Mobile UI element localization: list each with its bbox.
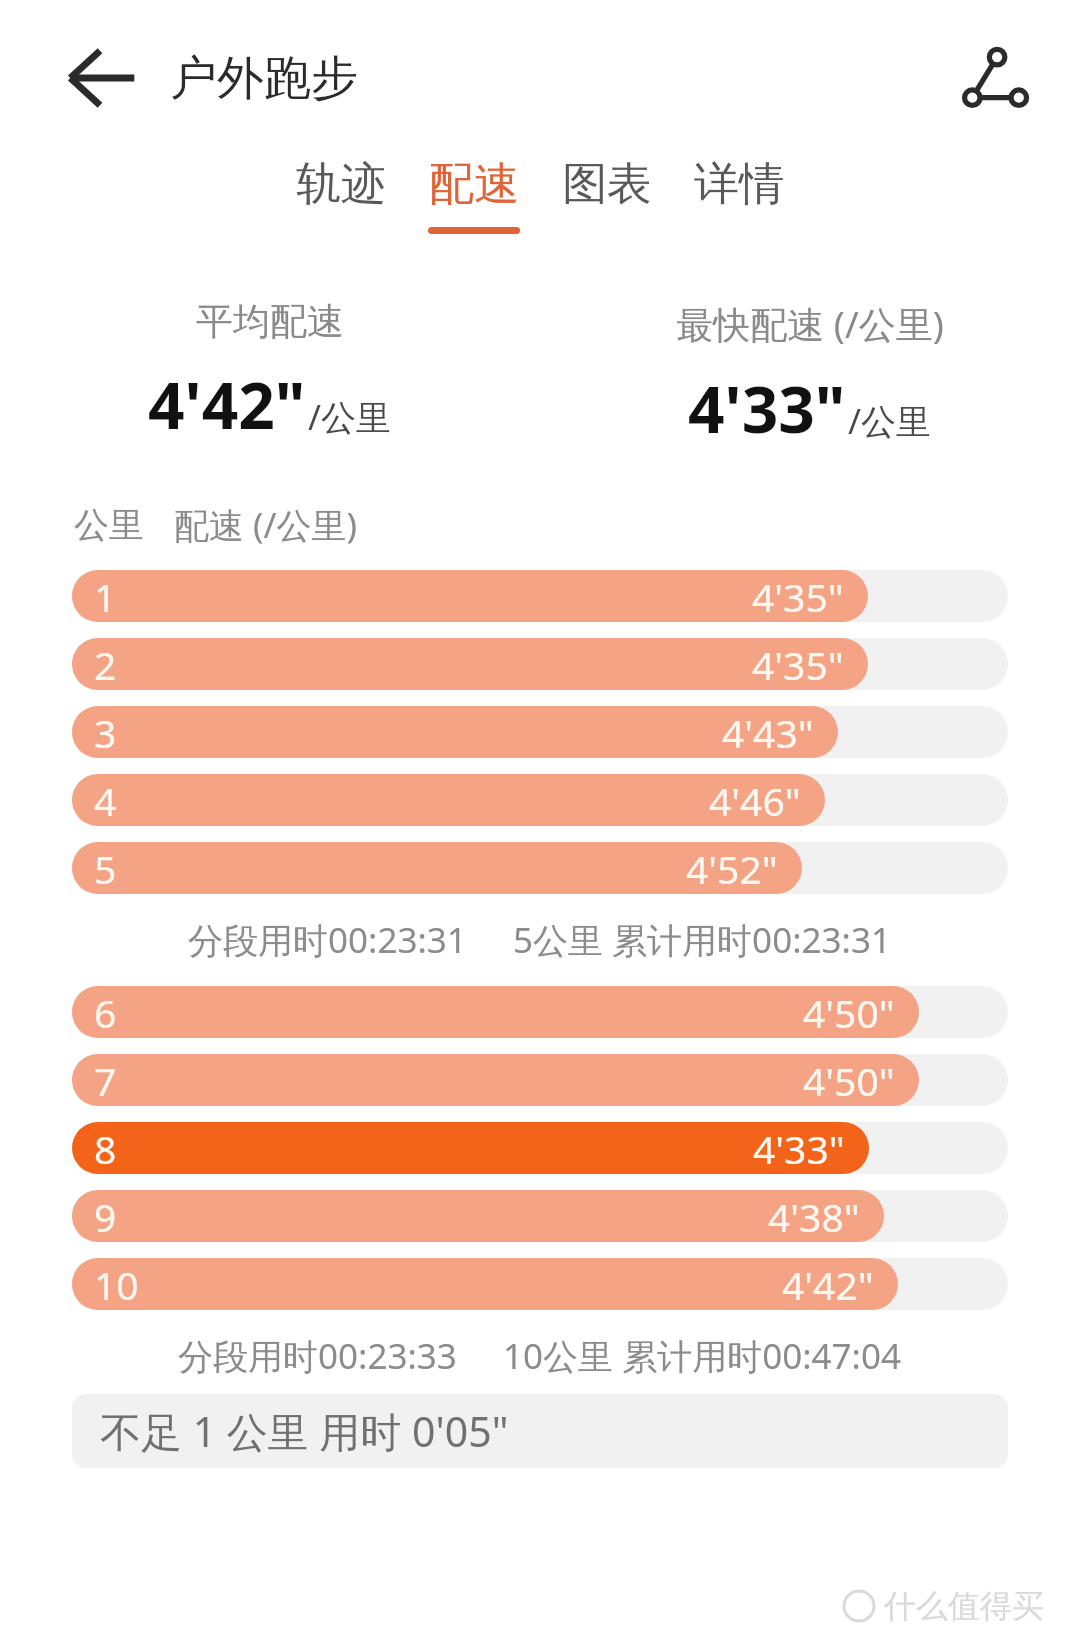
button[interactable]: 图表 [562, 156, 652, 234]
staticText: 4'42" [782, 1258, 874, 1310]
staticText: 4'50" [803, 1054, 895, 1106]
staticText: 9 [94, 1190, 117, 1242]
button[interactable]: 9 [72, 1182, 1008, 1250]
staticText: /公里 [308, 393, 392, 441]
button[interactable]: 5 [72, 834, 1008, 902]
staticText: 分段用时00:23:33 [178, 1332, 457, 1380]
staticText: 图表 [562, 156, 652, 213]
staticText: 4'33" [688, 365, 846, 452]
staticText: 4'35" [752, 570, 844, 622]
button[interactable]: Share [936, 20, 1052, 136]
staticText: 配速 (/公里) [174, 501, 358, 549]
button[interactable]: 配速 [428, 156, 520, 234]
button[interactable]: 7 [72, 1046, 1008, 1114]
staticText: 户外跑步 [170, 49, 358, 108]
staticText: 5公里 累计用时00:23:31 [513, 916, 892, 964]
staticText: 6 [94, 986, 117, 1038]
button[interactable]: 10 [72, 1250, 1008, 1318]
button[interactable]: 不足 1 公里 用时 0'05" [72, 1394, 1008, 1468]
staticText: 4'52" [686, 842, 778, 894]
staticText: 8 [94, 1122, 117, 1174]
staticText: 配速 [429, 156, 519, 213]
staticText: 分段用时00:23:31 [188, 916, 467, 964]
button[interactable]: 轨迹 [296, 156, 386, 234]
staticText: 4'50" [803, 986, 895, 1038]
staticText: 10 [94, 1258, 139, 1310]
staticText: 4'46" [709, 774, 801, 826]
staticText: 5 [94, 842, 117, 894]
button[interactable]: Back [46, 22, 158, 134]
staticText: 轨迹 [296, 156, 386, 213]
staticText: 4'38" [768, 1190, 860, 1242]
staticText: 2 [94, 638, 117, 690]
button[interactable]: 4 [72, 766, 1008, 834]
staticText: 公里 [74, 503, 144, 547]
staticText: 什么值得买 [884, 1586, 1044, 1626]
staticText: 7 [94, 1054, 117, 1106]
button[interactable]: 1 [72, 562, 1008, 630]
staticText: 不足 1 公里 用时 0'05" [100, 1403, 509, 1459]
staticText: 4'33" [753, 1122, 845, 1174]
staticText: 4'42" [148, 361, 306, 448]
staticText: 4'35" [752, 638, 844, 690]
staticText: 1 [94, 570, 117, 622]
button[interactable]: 8 [72, 1114, 1008, 1182]
staticText: 4'43" [722, 706, 814, 758]
staticText: 最快配速 (/公里) [676, 298, 944, 349]
button[interactable]: 3 [72, 698, 1008, 766]
staticText: 3 [94, 706, 117, 758]
staticText: 10公里 累计用时00:47:04 [503, 1332, 902, 1380]
staticText: 4 [94, 774, 117, 826]
staticText: 详情 [694, 156, 784, 213]
button[interactable]: 6 [72, 978, 1008, 1046]
staticText: /公里 [848, 397, 932, 445]
button[interactable]: 2 [72, 630, 1008, 698]
button[interactable]: 详情 [694, 156, 784, 234]
staticText: 平均配速 [196, 298, 344, 345]
